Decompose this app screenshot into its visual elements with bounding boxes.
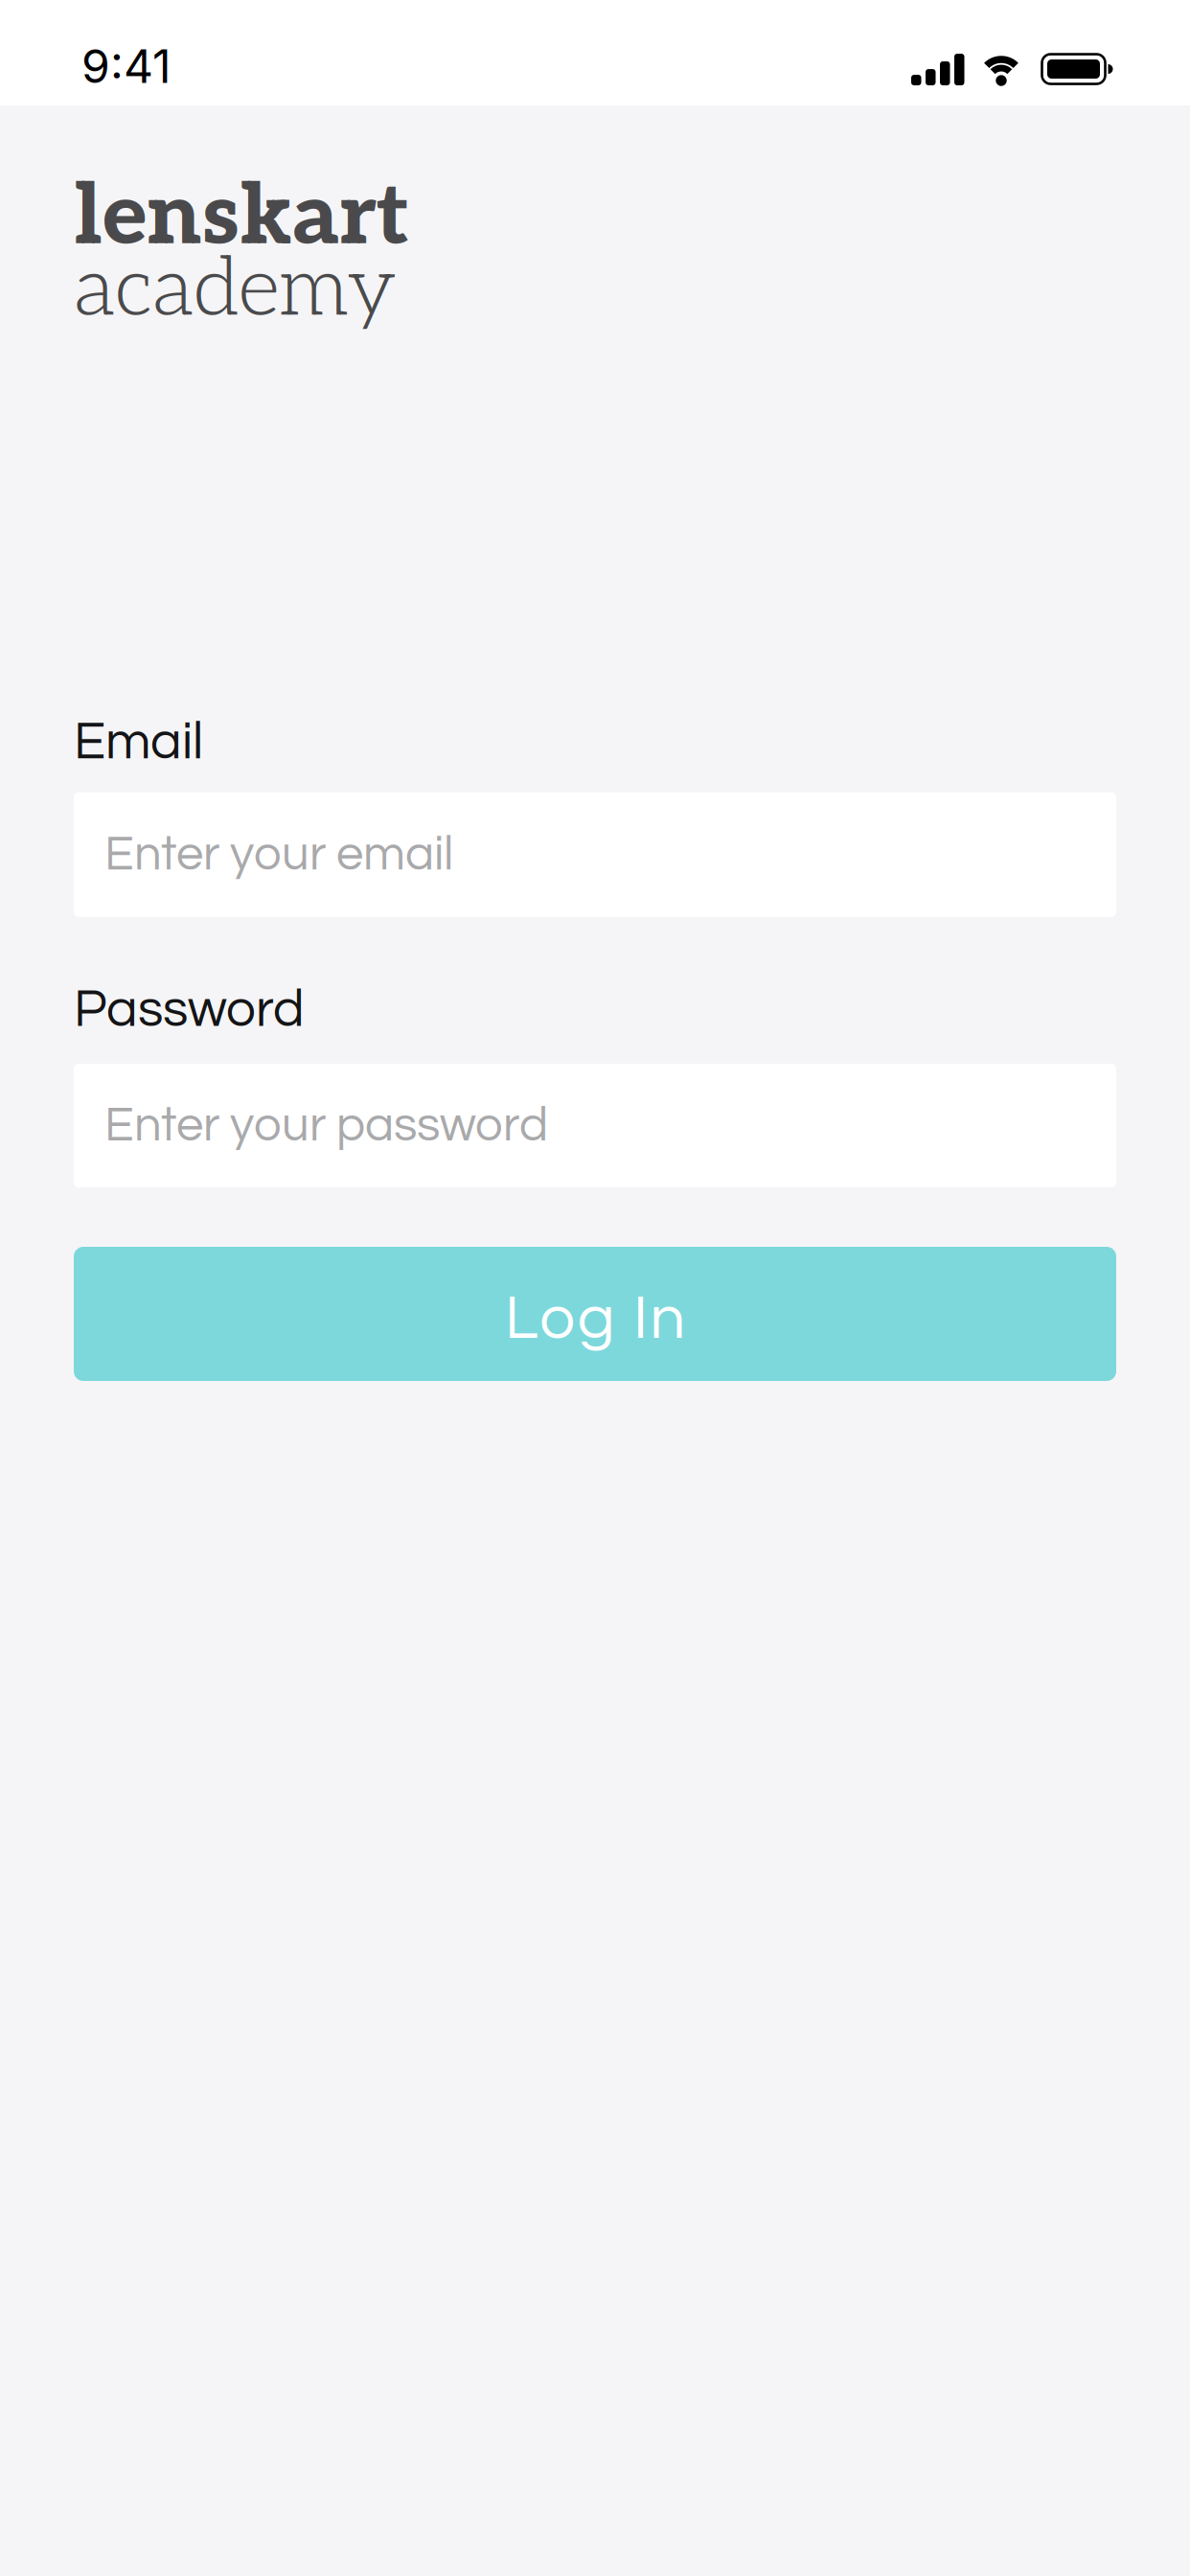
button[interactable]: Enter your email xyxy=(74,792,1116,917)
staticText: academy xyxy=(74,241,397,339)
staticText: 9:41 xyxy=(81,38,172,94)
staticText: Password xyxy=(74,983,305,1037)
staticText: Enter your email xyxy=(104,830,453,880)
button[interactable]: Enter your password xyxy=(74,1064,1116,1187)
staticText: Enter your password xyxy=(104,1101,548,1151)
staticText: lenskart xyxy=(74,167,409,268)
button[interactable]: Log In xyxy=(74,1247,1116,1381)
staticText: Log In xyxy=(505,1286,685,1351)
staticText: Email xyxy=(74,715,203,769)
